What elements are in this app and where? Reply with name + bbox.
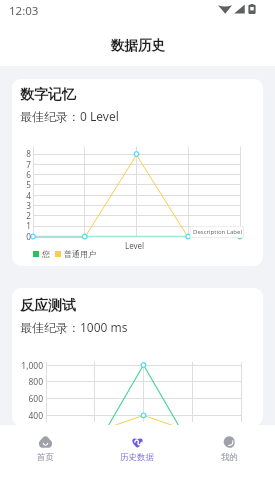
staticText: 600 (28, 393, 43, 405)
button[interactable]: 历史数据 (91, 425, 183, 479)
staticText: 首页 (37, 452, 54, 463)
staticText: 800 (28, 376, 43, 388)
staticText: 5 (26, 179, 31, 190)
button[interactable]: 首页 (0, 425, 91, 479)
staticText: 2 (26, 210, 31, 221)
staticText: 历史数据 (120, 452, 154, 463)
staticText: 我的 (221, 452, 238, 463)
staticText: 反应测试 (20, 297, 76, 315)
staticText: Level (125, 240, 145, 251)
staticText: 3 (26, 200, 31, 211)
staticText: 6 (26, 169, 31, 180)
staticText: 4 (26, 190, 31, 201)
staticText: 数字记忆 (20, 86, 76, 104)
staticText: 12:03 (9, 3, 39, 19)
staticText: 0 (26, 231, 31, 242)
button[interactable]: 我的 (183, 425, 275, 479)
staticText: 7 (26, 159, 31, 170)
staticText: 数据历史 (111, 37, 165, 54)
staticText: 您 (42, 249, 50, 259)
staticText: 8 (26, 148, 31, 159)
staticText: 最佳纪录：0 Level (20, 108, 119, 124)
staticText: 普通用户 (64, 249, 96, 259)
staticText: 1,000 (21, 360, 43, 372)
staticText: 400 (28, 410, 43, 422)
staticText: Description Label (193, 228, 242, 236)
staticText: 最佳纪录：1000 ms (20, 319, 128, 335)
staticText: 1 (26, 220, 31, 231)
